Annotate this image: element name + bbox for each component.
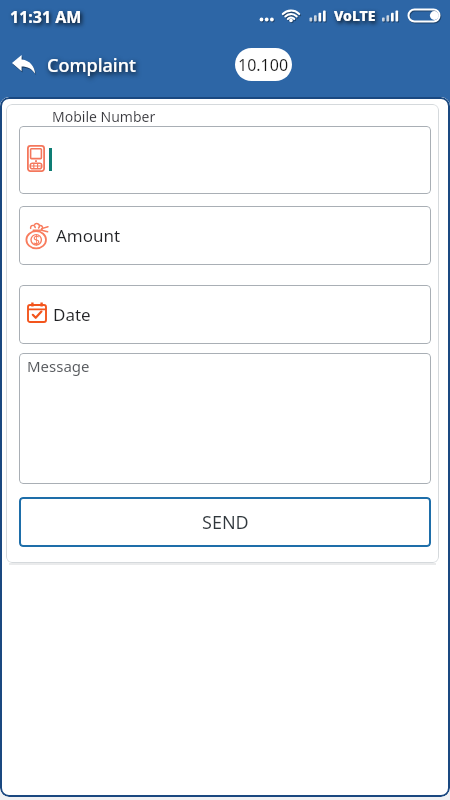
button[interactable]: Date: [19, 285, 431, 344]
button[interactable]: $: [19, 206, 431, 265]
staticText: 10.100: [238, 54, 289, 76]
button[interactable]: SEND: [19, 497, 431, 547]
staticText: VoLTE: [334, 6, 376, 25]
staticText: Message: [27, 356, 90, 376]
staticText: Mobile Number: [52, 107, 156, 126]
staticText: SEND: [202, 510, 249, 535]
staticText: 11:31 AM: [10, 6, 82, 28]
button[interactable]: 10.100: [235, 48, 292, 81]
button[interactable]: [19, 126, 431, 194]
button[interactable]: Message: [19, 353, 431, 484]
staticText: Amount: [56, 224, 121, 247]
staticText: $: [33, 232, 40, 248]
staticText: Complaint: [47, 53, 136, 78]
button[interactable]: [10, 54, 37, 78]
staticText: Date: [53, 303, 91, 326]
